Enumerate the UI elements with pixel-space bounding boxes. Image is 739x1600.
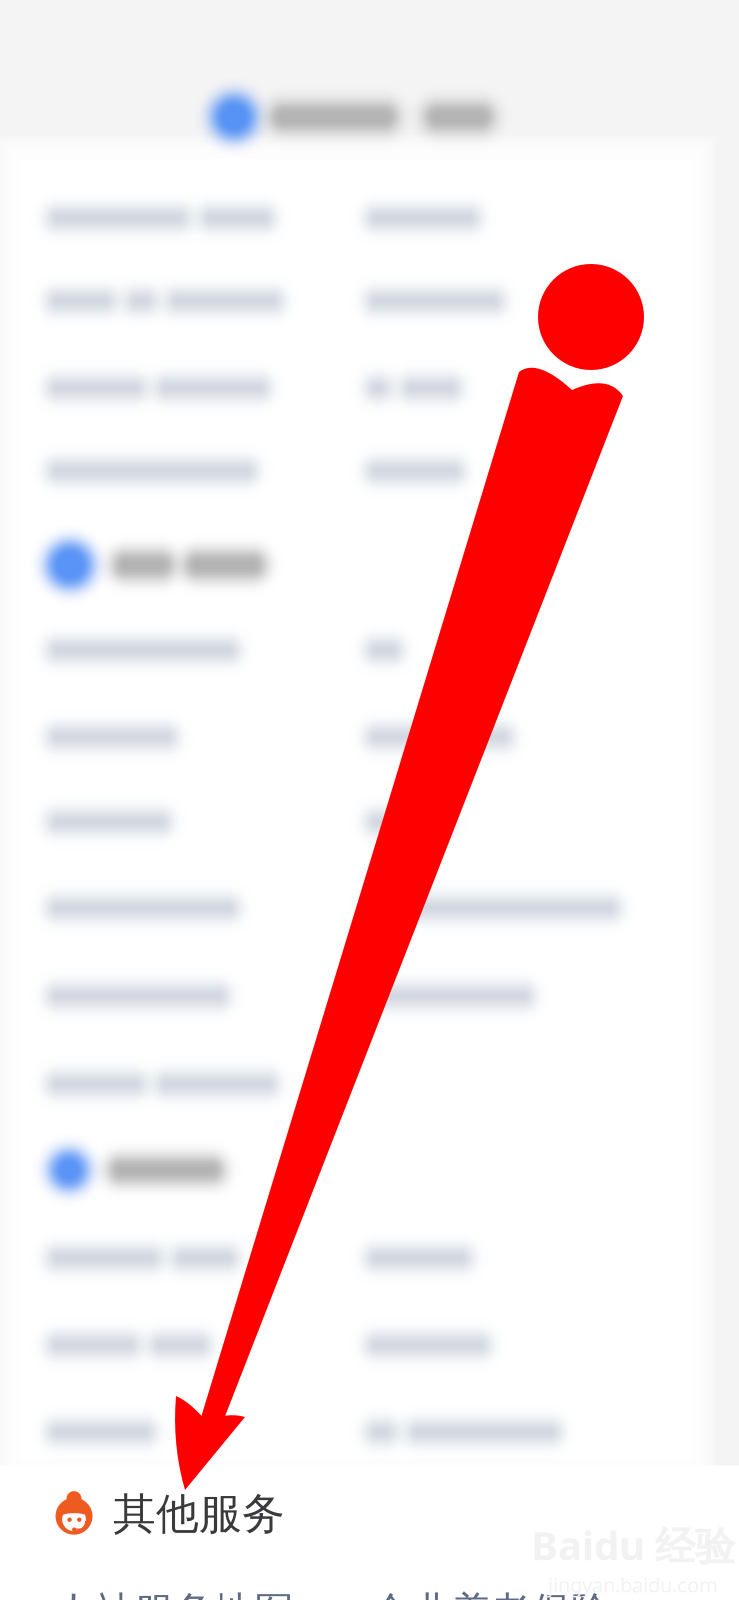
staticText: 企业养老保险	[371, 1587, 611, 1600]
button[interactable]	[48, 266, 348, 336]
button[interactable]	[48, 1223, 348, 1293]
button[interactable]	[367, 615, 677, 685]
button[interactable]: 其他服务	[0, 1468, 739, 1560]
button[interactable]	[367, 787, 677, 857]
button[interactable]	[48, 353, 348, 423]
button[interactable]	[367, 266, 677, 336]
button[interactable]	[367, 702, 677, 772]
button[interactable]: 人社服务地图	[0, 1590, 320, 1600]
button[interactable]	[48, 1310, 348, 1380]
button[interactable]	[367, 873, 677, 943]
button[interactable]	[48, 961, 348, 1031]
button[interactable]	[367, 1310, 677, 1380]
button[interactable]	[48, 436, 348, 506]
button[interactable]: 企业养老保险	[367, 1590, 687, 1600]
staticText: Baidu 经验	[531, 1518, 735, 1571]
button[interactable]	[367, 961, 677, 1031]
button[interactable]	[367, 1397, 677, 1467]
button[interactable]	[48, 873, 348, 943]
button[interactable]	[48, 702, 348, 772]
button[interactable]	[367, 183, 677, 253]
button[interactable]	[367, 436, 677, 506]
staticText: jingyan.baidu.com	[548, 1571, 718, 1598]
button[interactable]	[367, 1223, 677, 1293]
button[interactable]	[48, 1049, 348, 1119]
button[interactable]	[48, 615, 348, 685]
staticText: 其他服务	[113, 1488, 285, 1540]
button[interactable]	[48, 183, 348, 253]
button[interactable]	[367, 353, 677, 423]
staticText: 人社服务地图	[54, 1587, 294, 1600]
button[interactable]	[48, 787, 348, 857]
button[interactable]	[48, 1397, 348, 1467]
